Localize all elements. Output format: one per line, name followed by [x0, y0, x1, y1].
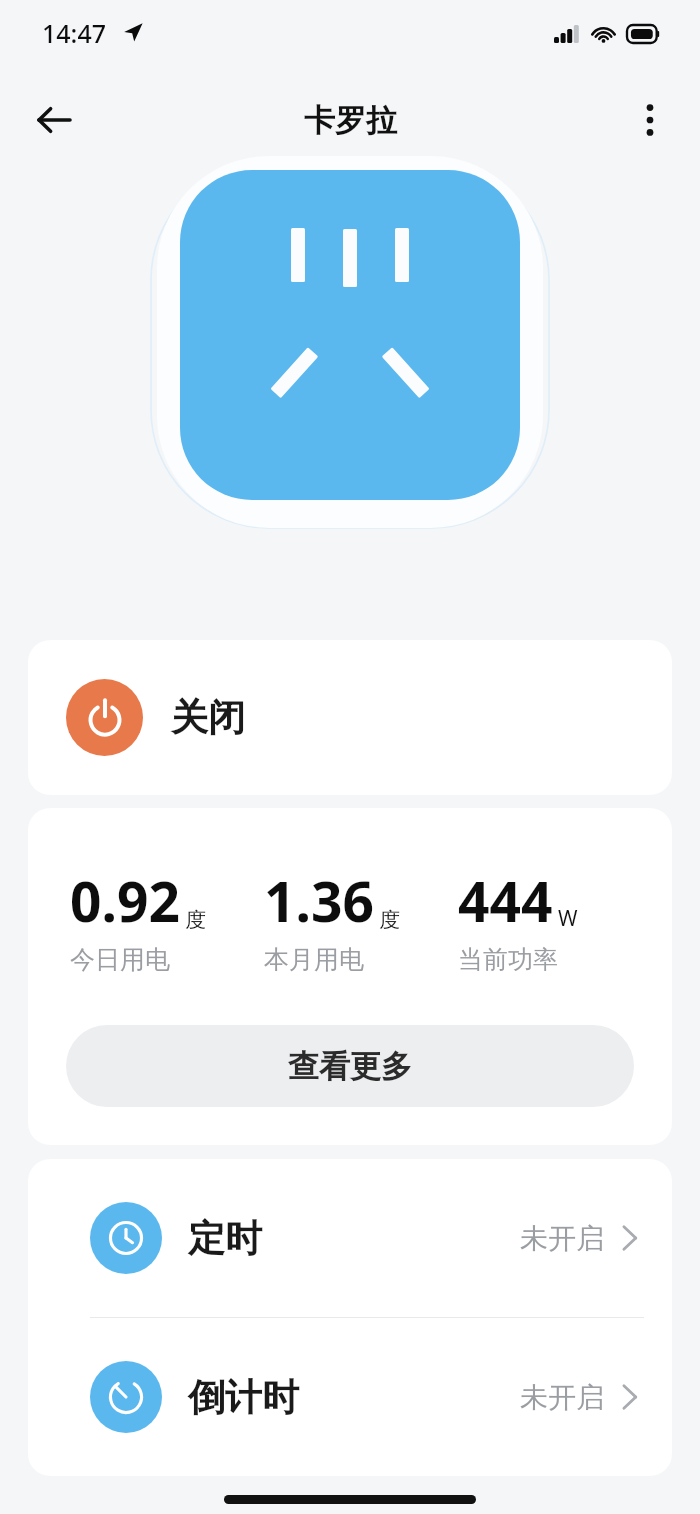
staticText: 未开启 — [520, 1221, 604, 1256]
staticText: 倒计时 — [188, 1374, 299, 1421]
button[interactable]: 关闭 — [28, 640, 672, 795]
staticText: 度 — [379, 907, 400, 933]
button[interactable]: 定时 — [28, 1159, 672, 1317]
staticText: 0.92 — [70, 863, 180, 938]
staticText: W — [558, 904, 578, 933]
button[interactable]: 查看更多 — [66, 1025, 634, 1107]
staticText: 度 — [185, 907, 206, 933]
staticText: 14:47 — [42, 16, 107, 50]
staticText: 关闭 — [171, 694, 245, 741]
button[interactable]: More options — [622, 92, 678, 148]
staticText: 1.36 — [264, 863, 374, 938]
button[interactable]: 倒计时 — [28, 1318, 672, 1476]
staticText: 未开启 — [520, 1380, 604, 1415]
staticText: 查看更多 — [288, 1047, 412, 1086]
staticText: 卡罗拉 — [304, 101, 397, 140]
staticText: 444 — [458, 863, 553, 938]
staticText: 当前功率 — [458, 944, 558, 975]
staticText: 今日用电 — [70, 944, 170, 975]
staticText: 本月用电 — [264, 944, 364, 975]
staticText: 定时 — [188, 1215, 262, 1262]
button[interactable]: Back — [24, 90, 84, 150]
